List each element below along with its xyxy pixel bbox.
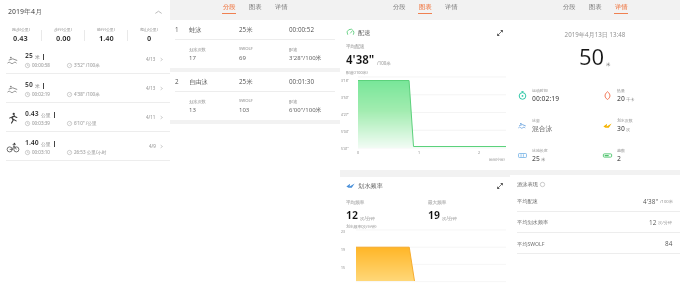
staticText: 12: [346, 208, 359, 222]
button[interactable]: 2: [170, 72, 340, 124]
staticText: 4/13: [146, 56, 156, 62]
staticText: 蛙泳: [189, 26, 239, 34]
staticText: 0.00: [56, 33, 71, 43]
staticText: 爬山(公里): [140, 27, 158, 32]
staticText: 0: [357, 150, 360, 155]
staticText: 00:03:39: [32, 120, 50, 126]
button[interactable]: 50: [0, 74, 170, 103]
staticText: 00:00:52: [289, 25, 314, 34]
button[interactable]: 平均划水频率: [517, 212, 673, 232]
staticText: 配速(/100米): [346, 70, 368, 75]
staticText: 6'10" /公里: [74, 120, 97, 126]
staticText: 平均配速: [517, 198, 538, 205]
staticText: 00:00:58: [32, 62, 50, 68]
button[interactable]: 平均配速: [517, 191, 673, 211]
staticText: 4/9: [149, 143, 156, 149]
staticText: 千卡: [626, 97, 635, 102]
staticText: 米: [35, 83, 40, 89]
button[interactable]: 0.43: [0, 103, 170, 132]
button[interactable]: 详情: [608, 3, 634, 14]
staticText: /100米: [660, 199, 673, 205]
staticText: 6'00"/100米: [289, 106, 322, 114]
staticText: 00:02:19: [532, 94, 560, 103]
staticText: 1: [175, 25, 189, 34]
staticText: 50: [25, 80, 33, 89]
other: Collapse: [154, 8, 163, 17]
staticText: 运动时间: [532, 88, 548, 93]
button[interactable]: Expand pace chart: [496, 29, 504, 37]
staticText: 米: [35, 54, 40, 60]
staticText: 1.40: [99, 33, 114, 43]
staticText: 00:01:30: [289, 77, 314, 86]
button[interactable]: 分段: [386, 3, 412, 14]
button[interactable]: 图表: [242, 3, 268, 14]
staticText: 详情: [275, 3, 288, 11]
staticText: 13: [189, 106, 196, 114]
staticText: 2019年4月: [8, 7, 43, 17]
button[interactable]: 图表: [582, 3, 608, 14]
staticText: 3'52" /100米: [74, 62, 100, 68]
staticText: SWOLF: [239, 46, 253, 52]
button[interactable]: 详情: [438, 3, 464, 14]
staticText: 次: [626, 127, 631, 132]
staticText: 4'38": [346, 52, 375, 68]
staticText: 泳姿: [532, 118, 540, 123]
staticText: 23: [341, 229, 345, 234]
staticText: 69: [239, 54, 246, 62]
staticText: 热量: [617, 88, 625, 93]
staticText: 0.43: [13, 33, 28, 43]
staticText: 最大频率: [428, 200, 447, 206]
staticText: 游泳表现: [517, 181, 538, 188]
staticText: 25: [532, 154, 540, 163]
staticText: 骑行(公里): [97, 27, 115, 32]
staticText: 1.40: [25, 138, 39, 147]
staticText: 00:02:19: [32, 91, 50, 97]
staticText: 2019年4月13日 13:48: [510, 30, 680, 38]
button[interactable]: 平均SWOLF: [517, 233, 673, 253]
staticText: 1: [418, 150, 421, 155]
staticText: 4'38" /100米: [74, 91, 100, 97]
staticText: 配速: [289, 99, 298, 104]
staticText: 12: [649, 218, 657, 227]
staticText: 米: [541, 157, 546, 162]
staticText: 25: [25, 51, 33, 60]
staticText: 自由泳: [189, 78, 239, 86]
button[interactable]: Expand stroke rate chart: [496, 182, 504, 190]
staticText: 公里: [41, 141, 51, 147]
button[interactable]: 25: [0, 45, 170, 74]
staticText: 3'50": [341, 95, 349, 100]
staticText: 划水次数: [189, 47, 206, 52]
staticText: 84: [665, 239, 673, 248]
button[interactable]: 详情: [268, 3, 294, 14]
staticText: 配速: [358, 29, 371, 37]
staticText: 2: [478, 150, 481, 155]
staticText: 2: [617, 154, 621, 163]
button[interactable]: 2019年4月: [0, 4, 170, 20]
staticText: 20: [617, 94, 625, 103]
button[interactable]: 图表: [412, 3, 438, 14]
button[interactable]: 1.40: [0, 132, 170, 161]
staticText: 米: [606, 62, 611, 68]
button[interactable]: 1: [170, 20, 340, 72]
staticText: 平均SWOLF: [517, 240, 545, 247]
staticText: 平均划水频率: [517, 219, 549, 226]
button[interactable]: 分段: [216, 3, 242, 14]
staticText: 5'41": [341, 146, 349, 151]
staticText: 50: [579, 41, 605, 71]
staticText: 配速: [289, 47, 298, 52]
staticText: 4'27": [341, 112, 349, 117]
staticText: 5'04": [341, 129, 349, 134]
staticText: 26:53 公里/小时: [74, 149, 107, 155]
staticText: 时间(小时): [489, 157, 505, 162]
staticText: 图表: [419, 3, 432, 11]
staticText: 平均频率: [346, 200, 365, 206]
staticText: 公里: [41, 112, 51, 118]
staticText: 划水次数: [617, 118, 633, 123]
staticText: 详情: [445, 3, 458, 11]
staticText: 17: [189, 54, 196, 62]
staticText: 混合泳: [532, 124, 553, 133]
staticText: 3'18": [341, 78, 349, 83]
button[interactable]: 分段: [556, 3, 582, 14]
staticText: 4/13: [146, 85, 156, 91]
staticText: 25米: [239, 25, 289, 34]
